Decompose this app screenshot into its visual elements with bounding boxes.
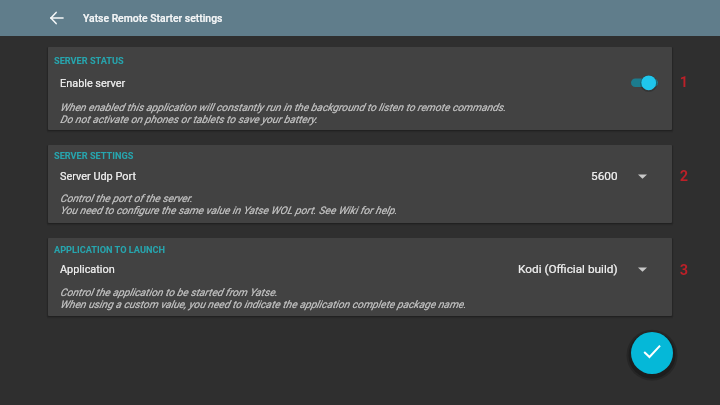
button[interactable]: Confirm bbox=[631, 332, 673, 374]
staticText: You need to configure the same value in … bbox=[60, 204, 398, 216]
button[interactable]: Server Udp Port bbox=[48, 165, 672, 187]
staticText: Do not activate on phones or tablets to … bbox=[60, 113, 318, 125]
button[interactable]: Application bbox=[48, 258, 672, 280]
staticText: 1 bbox=[678, 74, 690, 91]
staticText: Application bbox=[60, 263, 115, 276]
staticText: Enable server bbox=[60, 77, 126, 90]
staticText: 3 bbox=[678, 262, 690, 279]
staticText: 2 bbox=[678, 168, 690, 185]
staticText: Server Udp Port bbox=[60, 170, 136, 183]
staticText: Control the application to be started fr… bbox=[60, 286, 278, 298]
button[interactable]: Enable server bbox=[616, 72, 672, 94]
staticText: Control the port of the server. bbox=[60, 192, 193, 204]
button[interactable]: Enable server bbox=[48, 72, 672, 94]
staticText: 5600 bbox=[591, 169, 618, 183]
staticText: SERVER STATUS bbox=[54, 55, 124, 66]
button[interactable]: Kodi (Official build) bbox=[518, 262, 672, 276]
staticText: SERVER SETTINGS bbox=[54, 150, 134, 161]
staticText: When enabled this application will const… bbox=[60, 101, 506, 113]
staticText: When using a custom value, you need to i… bbox=[60, 298, 467, 310]
staticText: APPLICATION TO LAUNCH bbox=[54, 244, 165, 255]
button[interactable]: Navigate up bbox=[45, 6, 69, 30]
staticText: Kodi (Official build) bbox=[518, 262, 618, 276]
button[interactable]: 5600 bbox=[591, 169, 672, 183]
staticText: Yatse Remote Starter settings bbox=[83, 12, 223, 24]
